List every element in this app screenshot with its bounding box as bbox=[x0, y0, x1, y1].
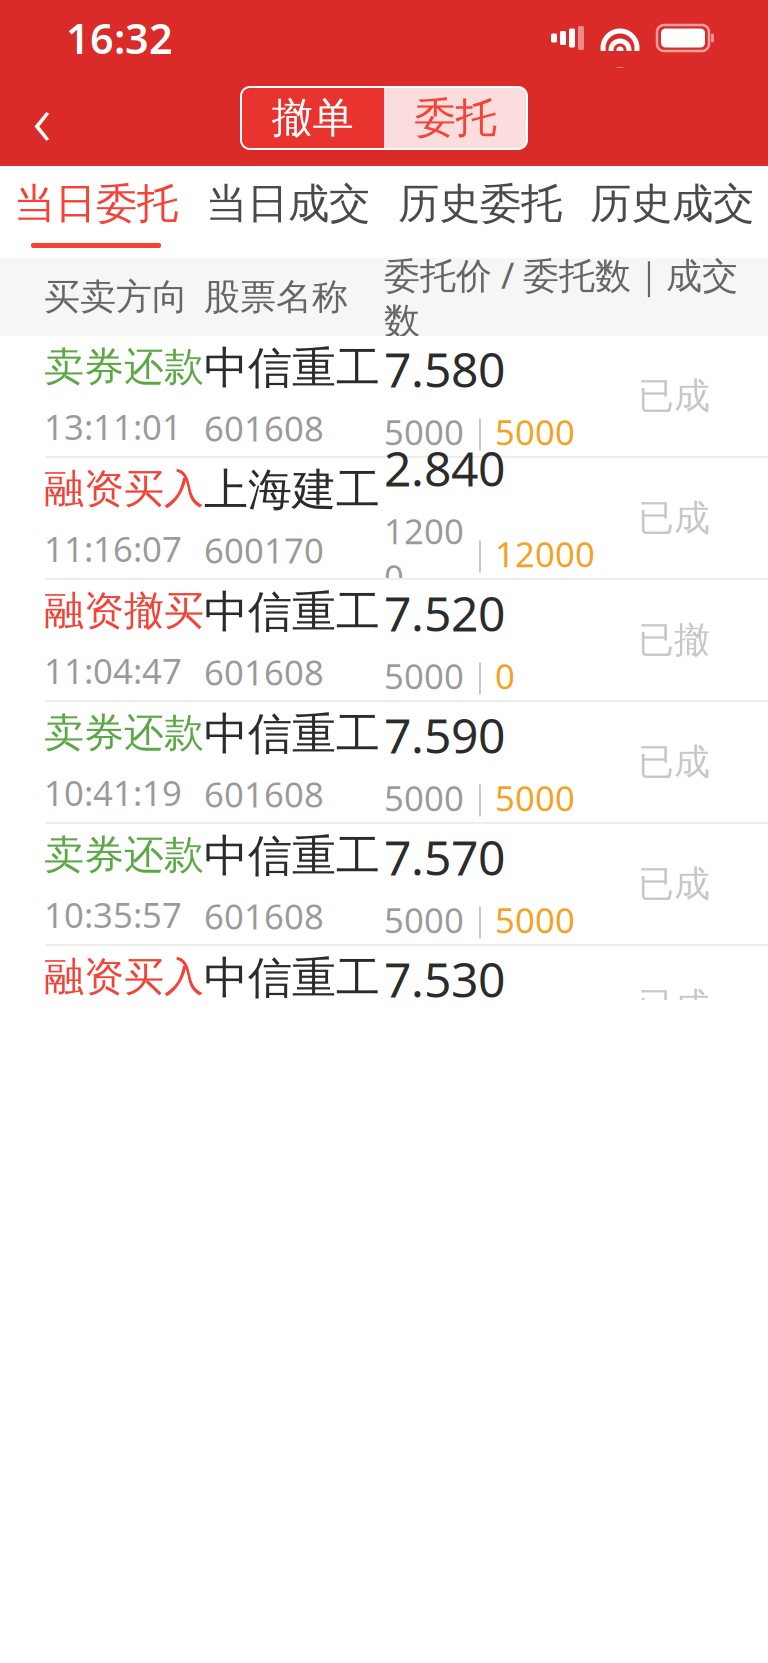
staticText: 已成 bbox=[638, 496, 710, 540]
staticText: 600170 bbox=[204, 527, 324, 573]
button[interactable]: 融资买入 bbox=[0, 458, 768, 580]
staticText: 12000 bbox=[495, 531, 595, 577]
staticText: 上海建工 bbox=[204, 463, 380, 517]
staticText: 委托价 / 委托数｜成交数 bbox=[384, 251, 738, 343]
button[interactable]: 委托 bbox=[384, 87, 527, 149]
staticText: 11:16:07 bbox=[44, 525, 182, 571]
staticText: 5000 bbox=[495, 775, 575, 821]
staticText: 5000 bbox=[495, 409, 575, 455]
staticText: 已成 bbox=[638, 984, 710, 1028]
staticText: 撤单 bbox=[271, 93, 353, 143]
button[interactable]: 卖券还款 bbox=[0, 702, 768, 824]
staticText: 当日委托 bbox=[14, 178, 178, 229]
staticText: 融资撤买 bbox=[44, 586, 204, 635]
staticText: 601608 bbox=[204, 893, 324, 939]
button[interactable]: 当日委托 bbox=[0, 166, 192, 258]
button[interactable]: 历史委托 bbox=[384, 166, 576, 258]
staticText: ‹ bbox=[32, 70, 51, 166]
button[interactable]: 撤单 bbox=[241, 87, 384, 149]
button[interactable]: Back bbox=[0, 76, 84, 160]
staticText: 10:41:19 bbox=[44, 769, 182, 815]
staticText: ｜ bbox=[464, 412, 495, 451]
staticText: 卖券还款 bbox=[44, 708, 204, 757]
staticText: 5000 bbox=[495, 897, 575, 943]
staticText: 13:11:01 bbox=[44, 403, 182, 449]
staticText: 12000 bbox=[384, 508, 464, 600]
staticText: 已撤 bbox=[638, 618, 710, 662]
staticText: 中信重工 bbox=[204, 585, 380, 639]
staticText: ｜ bbox=[464, 900, 495, 939]
staticText: 7.530 bbox=[384, 947, 505, 1011]
button[interactable]: 卖券还款 bbox=[0, 824, 768, 946]
button[interactable]: 当日成交 bbox=[192, 166, 384, 258]
staticText: 中信重工 bbox=[204, 951, 380, 1005]
staticText: 股票名称 bbox=[204, 275, 348, 319]
staticText: 融资买入 bbox=[44, 464, 204, 513]
staticText: 0 bbox=[495, 653, 515, 699]
staticText: 已成 bbox=[638, 374, 710, 418]
button[interactable]: 融资买入 bbox=[0, 946, 768, 1068]
staticText: 5000 bbox=[384, 653, 464, 699]
staticText: 7.580 bbox=[384, 337, 505, 401]
staticText: 买卖方向 bbox=[44, 275, 188, 319]
staticText: 10:35:57 bbox=[44, 891, 182, 937]
button[interactable]: 卖券还款 bbox=[0, 336, 768, 458]
staticText: ｜ bbox=[464, 778, 495, 817]
staticText: 5000 bbox=[384, 897, 464, 943]
staticText: 委托 bbox=[414, 93, 496, 143]
staticText: 已成 bbox=[638, 862, 710, 906]
staticText: 已成 bbox=[638, 740, 710, 784]
staticText: 卖券还款 bbox=[44, 830, 204, 879]
staticText: 中信重工 bbox=[204, 707, 380, 761]
staticText: ｜ bbox=[464, 656, 495, 695]
staticText: 卖券还款 bbox=[44, 342, 204, 391]
button[interactable]: 融资撤买 bbox=[0, 580, 768, 702]
staticText: 历史委托 bbox=[398, 178, 562, 229]
button[interactable]: 历史成交 bbox=[576, 166, 768, 258]
staticText: 中信重工 bbox=[204, 829, 380, 883]
staticText: 7.520 bbox=[384, 581, 505, 645]
staticText: 7.590 bbox=[384, 703, 505, 767]
staticText: 当日成交 bbox=[206, 178, 370, 229]
staticText: 历史成交 bbox=[590, 178, 754, 229]
